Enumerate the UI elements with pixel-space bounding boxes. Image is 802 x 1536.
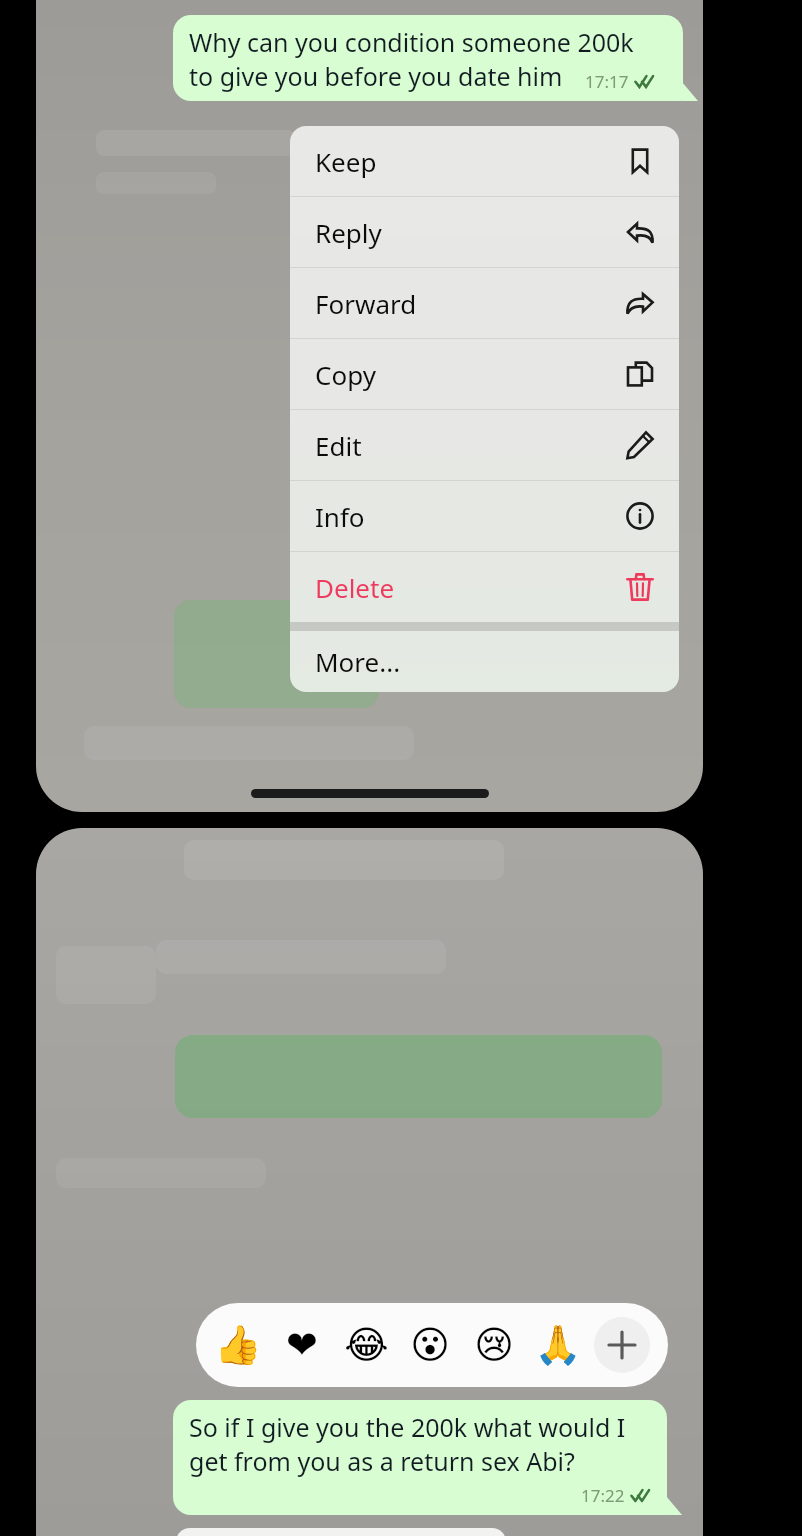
staticText: Edit: [315, 428, 362, 463]
button[interactable]: Keep: [290, 126, 679, 196]
staticText: Forward: [315, 286, 417, 321]
button[interactable]: Why can you condition someone 200k: [173, 15, 683, 101]
staticText: to give you before you date him: [189, 59, 563, 93]
button[interactable]: More reactions: [594, 1317, 650, 1373]
staticText: 😢: [474, 1323, 514, 1367]
button[interactable]: 🙏: [530, 1317, 586, 1373]
staticText: 17:17: [585, 70, 629, 93]
button[interactable]: Copy: [290, 339, 679, 409]
button[interactable]: ❤️: [274, 1317, 330, 1373]
staticText: Reply: [315, 215, 382, 250]
staticText: 😮: [410, 1323, 450, 1367]
button[interactable]: 👍: [210, 1317, 266, 1373]
button[interactable]: Edit: [290, 410, 679, 480]
staticText: get from you as a return sex Abi?: [189, 1444, 575, 1478]
button[interactable]: Forward: [290, 268, 679, 338]
staticText: 🙏: [534, 1323, 582, 1368]
staticText: So if I give you the 200k what would I: [189, 1410, 626, 1444]
button[interactable]: So if I give you the 200k what would I: [173, 1400, 667, 1515]
staticText: Delete: [315, 570, 395, 605]
button[interactable]: 😮: [402, 1317, 458, 1373]
staticText: Keep: [315, 144, 377, 179]
button[interactable]: Delete: [290, 552, 679, 622]
staticText: 👍: [214, 1323, 262, 1368]
button[interactable]: 😢: [466, 1317, 522, 1373]
staticText: More...: [315, 644, 401, 679]
staticText: Copy: [315, 357, 376, 392]
staticText: 😂: [344, 1323, 389, 1367]
button[interactable]: 😂: [338, 1317, 394, 1373]
staticText: Why can you condition someone 200k: [189, 25, 634, 59]
button[interactable]: Info: [290, 481, 679, 551]
staticText: 17:22: [581, 1484, 625, 1507]
button[interactable]: Reply: [290, 197, 679, 267]
staticText: ❤️: [286, 1323, 318, 1367]
staticText: Info: [315, 499, 365, 534]
button[interactable]: More...: [290, 631, 679, 692]
